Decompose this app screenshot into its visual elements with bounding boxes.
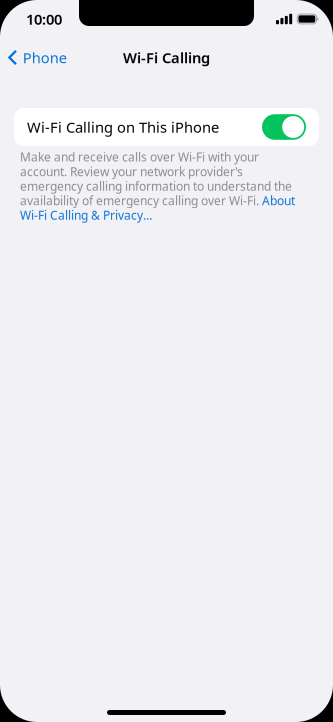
button[interactable]: Phone [0, 40, 77, 75]
staticText: Wi-Fi Calling on This iPhone [27, 117, 219, 137]
staticText: Phone [23, 48, 67, 67]
button[interactable]: Wi-Fi Calling on This iPhone [14, 108, 319, 146]
staticText: Make and receive calls over Wi-Fi with y… [20, 149, 295, 223]
staticText: 10:00 [26, 9, 62, 29]
staticText: Wi-Fi Calling [123, 47, 210, 67]
